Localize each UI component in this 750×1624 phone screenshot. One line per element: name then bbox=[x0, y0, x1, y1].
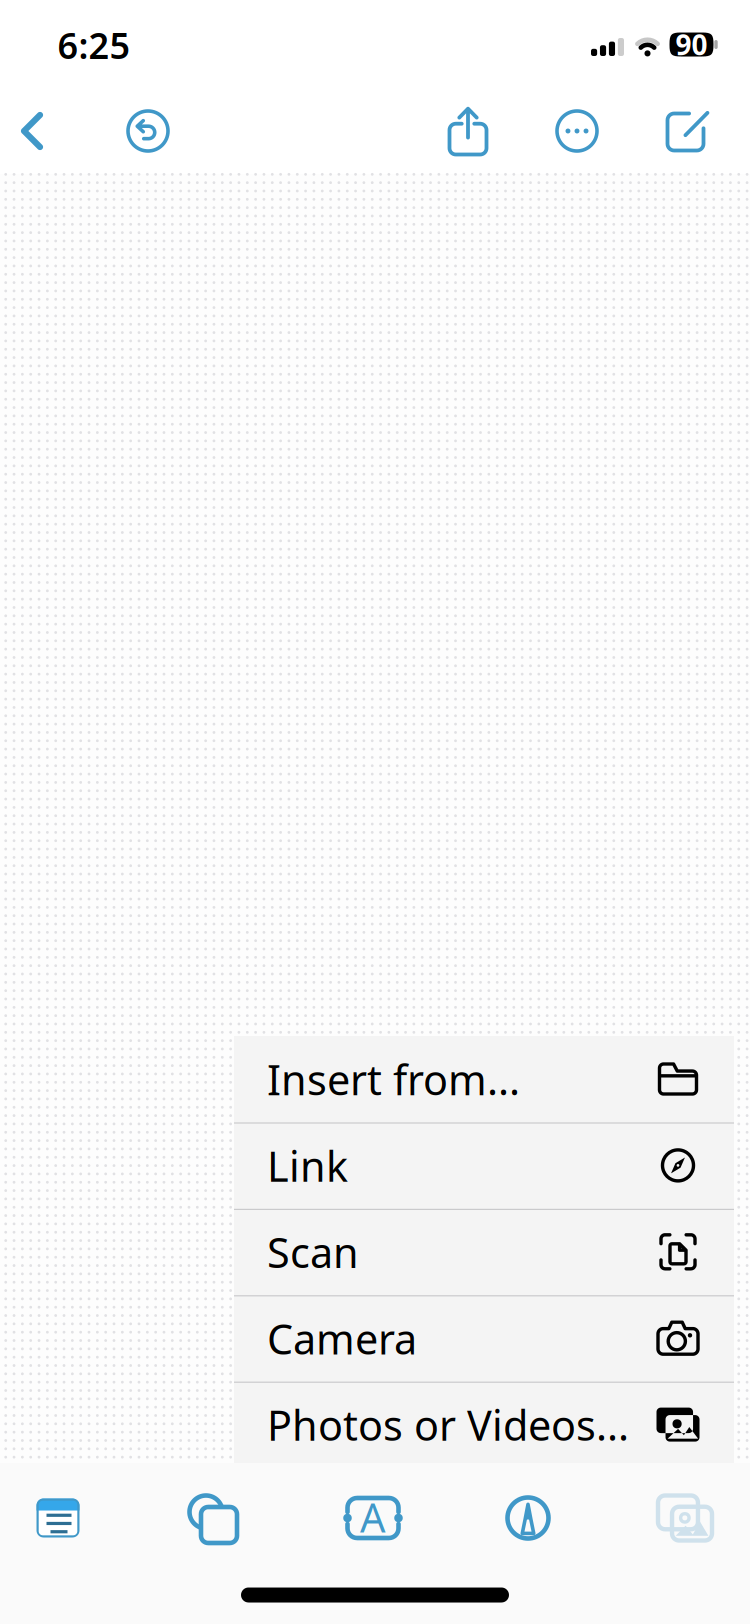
staticText: Insert from... bbox=[267, 1052, 520, 1107]
button[interactable]: Markup bbox=[476, 1470, 580, 1566]
button[interactable]: Camera bbox=[234, 1295, 734, 1382]
staticText: Photos or Videos... bbox=[267, 1397, 629, 1452]
button[interactable]: Back bbox=[0, 87, 68, 175]
staticText: Link bbox=[267, 1138, 348, 1193]
button[interactable]: Scan bbox=[234, 1209, 734, 1295]
button[interactable]: Compose bbox=[647, 87, 733, 175]
staticText: Scan bbox=[267, 1225, 359, 1279]
button[interactable]: Photos or Videos... bbox=[234, 1382, 734, 1468]
button[interactable]: Document bbox=[6, 1470, 110, 1566]
button[interactable]: Share bbox=[425, 87, 511, 175]
button[interactable]: Undo bbox=[105, 87, 191, 175]
button[interactable]: More bbox=[534, 87, 620, 175]
button[interactable]: Link bbox=[234, 1122, 734, 1209]
button[interactable]: Text Box bbox=[321, 1470, 425, 1566]
button[interactable]: Media bbox=[633, 1470, 737, 1566]
staticText: Camera bbox=[267, 1311, 417, 1366]
staticText: 6:25 bbox=[57, 21, 130, 69]
staticText: 90 bbox=[675, 26, 707, 63]
button[interactable]: Insert from... bbox=[234, 1036, 734, 1122]
staticText: A bbox=[360, 1490, 386, 1543]
button[interactable]: Shapes bbox=[161, 1470, 265, 1566]
